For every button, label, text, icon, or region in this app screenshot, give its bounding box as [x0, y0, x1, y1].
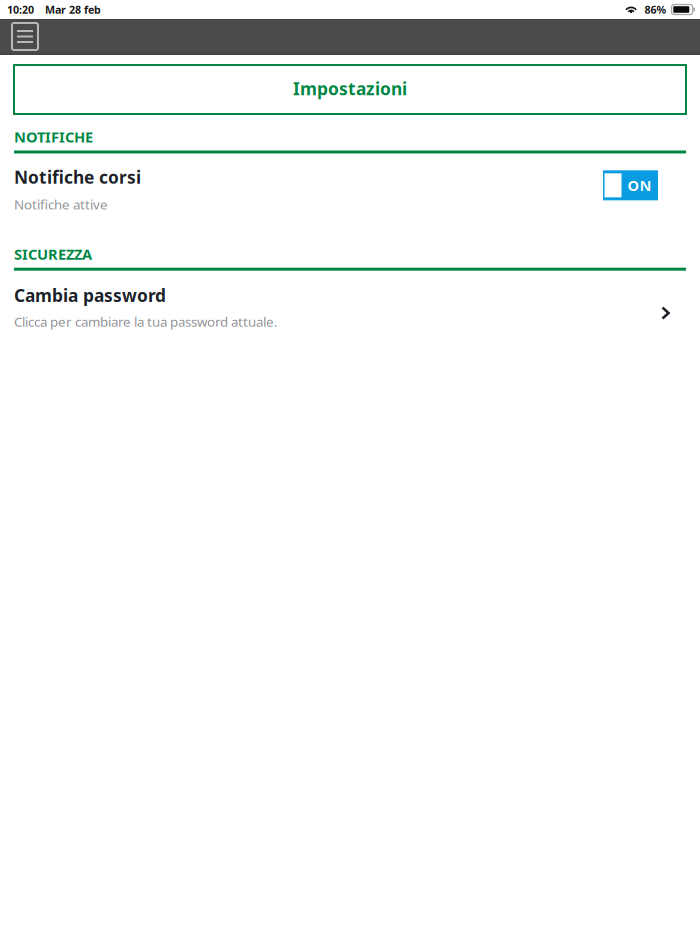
staticText: ON	[627, 176, 651, 195]
button[interactable]: Menu	[12, 23, 38, 50]
staticText: Mar 28 feb	[45, 2, 101, 17]
staticText: Notifiche corsi	[14, 165, 141, 188]
staticText: Impostazioni	[293, 77, 407, 100]
staticText: Cambia password	[14, 284, 166, 307]
staticText: NOTIFICHE	[14, 127, 93, 146]
button[interactable]: Notifiche corsi, attive, ON	[603, 174, 686, 204]
button[interactable]: Cambia password	[14, 284, 686, 330]
staticText: Clicca per cambiare la tua password attu…	[14, 313, 278, 330]
staticText: Notifiche attive	[14, 195, 108, 213]
staticText: SICUREZZA	[14, 244, 92, 264]
staticText: 86%	[645, 2, 667, 17]
staticText: 10:20	[7, 2, 34, 17]
